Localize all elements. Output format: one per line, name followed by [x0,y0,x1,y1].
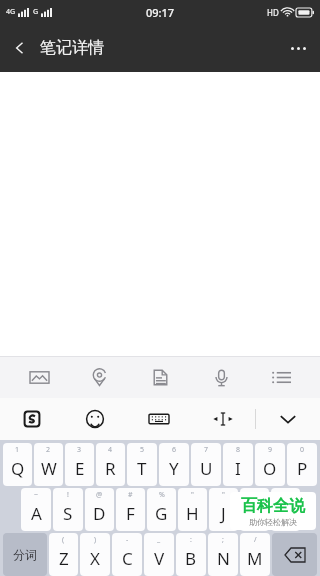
staticText: 百科全说 [241,496,305,516]
staticText: 助你轻松解决 [249,517,297,527]
staticText: 4G [6,7,16,17]
button[interactable]: 3 [65,443,94,486]
button[interactable]: Back [0,28,40,68]
staticText: G [155,502,168,525]
staticText: K [249,502,260,525]
staticText: 笔记详情 [40,38,104,58]
button[interactable]: _ [144,533,174,576]
staticText: 7 [204,445,209,455]
button[interactable]: ! [53,488,83,531]
staticText: - [126,535,129,545]
staticText: W [41,457,57,480]
staticText: ~ [34,490,39,500]
button[interactable]: ? [271,488,300,531]
button[interactable]: 6 [159,443,189,486]
button[interactable]: ~ [21,488,51,531]
staticText: / [254,535,257,545]
button[interactable]: Keyboard layout [127,398,191,440]
button[interactable]: " [209,488,238,531]
button[interactable]: ; [208,533,238,576]
button[interactable]: Voice input [199,356,243,398]
button[interactable]: - [112,533,142,576]
staticText: L [281,502,290,525]
staticText: E [75,457,85,480]
staticText: J [221,502,226,525]
button[interactable]: 0 [287,443,317,486]
button[interactable]: * [240,488,269,531]
button[interactable]: % [147,488,176,531]
staticText: 0 [300,445,305,455]
button[interactable]: 百科全说 [230,492,316,530]
staticText: Y [169,457,179,480]
staticText: U [200,457,213,480]
staticText: % [159,490,165,500]
button[interactable]: More options [276,26,320,70]
button[interactable]: Move cursor [191,398,255,440]
staticText: T [137,457,147,480]
button[interactable]: 9 [255,443,285,486]
staticText: ( [62,535,65,545]
staticText: F [126,502,135,525]
staticText: S [63,502,73,525]
staticText: : [190,535,192,545]
staticText: # [128,490,133,500]
staticText: 6 [172,445,177,455]
staticText: 9 [268,445,273,455]
staticText: 5 [140,445,145,455]
button[interactable]: # [116,488,145,531]
button[interactable]: 7 [191,443,221,486]
staticText: M [247,547,263,570]
staticText: _ [157,535,161,545]
button[interactable]: 2 [34,443,63,486]
button[interactable]: : [176,533,206,576]
button[interactable]: ( [49,533,78,576]
staticText: " [191,490,194,500]
staticText: " [222,490,225,500]
button[interactable]: 4 [96,443,125,486]
staticText: N [217,547,230,570]
button[interactable]: Insert document [138,356,182,398]
staticText: Q [11,457,25,480]
staticText: H [186,502,199,525]
staticText: O [263,457,277,480]
staticText: 3 [77,445,82,455]
staticText: 2 [46,445,51,455]
button[interactable]: Insert list [259,356,303,398]
staticText: 8 [236,445,241,455]
button[interactable]: Backspace [272,533,317,576]
staticText: V [154,547,165,570]
staticText: G [33,7,39,17]
staticText: ; [222,535,224,545]
button[interactable]: 分词 [3,533,47,576]
staticText: R [105,457,116,480]
button[interactable]: / [240,533,270,576]
staticText: Z [59,547,69,570]
button[interactable]: 5 [127,443,157,486]
staticText: 1 [15,445,20,455]
button[interactable]: Insert image [17,356,61,398]
staticText: A [31,502,42,525]
button[interactable]: Emoji [63,398,127,440]
button[interactable]: 8 [223,443,253,486]
button[interactable]: ) [80,533,110,576]
staticText: HD [267,7,279,18]
staticText: I [235,457,241,480]
staticText: 09:17 [146,5,175,20]
staticText: C [122,547,133,570]
staticText: 分词 [13,547,37,562]
button[interactable]: Insert location [77,356,121,398]
staticText: * [253,490,257,500]
button[interactable]: Hide keyboard [256,398,320,440]
button[interactable]: 1 [3,443,32,486]
staticText: 4 [108,445,113,455]
staticText: ) [94,535,97,545]
staticText: ! [67,490,69,500]
staticText: B [185,547,197,570]
button[interactable]: Sogou input [0,398,63,440]
button[interactable]: " [178,488,207,531]
staticText: D [93,502,106,525]
button[interactable]: @ [85,488,114,531]
staticText: X [90,547,100,570]
staticText: P [297,457,308,480]
